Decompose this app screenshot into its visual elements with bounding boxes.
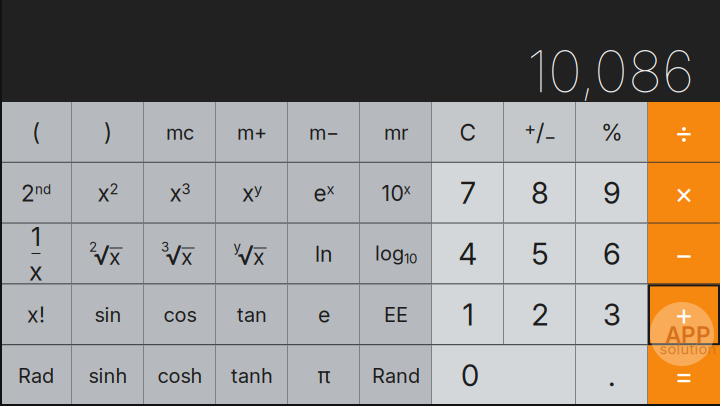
staticText: √ <box>93 239 110 271</box>
button[interactable]: 10x <box>360 163 432 224</box>
button[interactable]: . <box>576 345 648 406</box>
staticText: + <box>674 297 693 333</box>
staticText: m− <box>309 120 339 144</box>
staticText: tan <box>237 303 267 327</box>
button[interactable]: tan <box>216 284 288 345</box>
staticText: 5 <box>531 236 548 272</box>
button[interactable]: 6 <box>576 224 648 284</box>
button[interactable]: 2nd <box>0 163 72 224</box>
staticText: % <box>601 119 623 146</box>
button[interactable]: mc <box>144 102 216 163</box>
staticText: × <box>674 175 693 211</box>
staticText: e <box>318 302 330 328</box>
button[interactable]: ex <box>288 163 360 224</box>
staticText: cos <box>163 303 196 327</box>
button[interactable]: 7 <box>432 163 504 224</box>
button[interactable]: mr <box>360 102 432 163</box>
button[interactable]: 4 <box>432 224 504 284</box>
staticText: 2 <box>89 239 97 255</box>
staticText: 10,086 <box>527 37 694 106</box>
staticText: 8 <box>531 175 549 211</box>
button[interactable]: 3 <box>576 284 648 345</box>
staticText: Rand <box>372 363 420 388</box>
staticText: 1 <box>31 221 41 252</box>
button[interactable]: × <box>648 163 720 224</box>
staticText: √ <box>165 239 182 271</box>
button[interactable]: e <box>288 284 360 345</box>
button[interactable]: π <box>288 345 360 406</box>
button[interactable]: 3 <box>144 224 216 284</box>
button[interactable]: +/− <box>504 102 576 163</box>
staticText: tanh <box>231 363 273 388</box>
staticText: m+ <box>237 120 267 144</box>
staticText: y <box>233 239 240 255</box>
button[interactable]: m+ <box>216 102 288 163</box>
button[interactable]: EE <box>360 284 432 345</box>
button[interactable]: Rad <box>0 345 72 406</box>
button[interactable]: 1 <box>432 284 504 345</box>
button[interactable]: x3 <box>144 163 216 224</box>
staticText: 4 <box>458 236 477 272</box>
button[interactable]: % <box>576 102 648 163</box>
button[interactable]: 5 <box>504 224 576 284</box>
staticText: ln <box>315 241 333 267</box>
staticText: x <box>253 244 265 270</box>
staticText: √ <box>237 239 254 271</box>
staticText: 9 <box>603 175 621 211</box>
button[interactable]: y <box>216 224 288 284</box>
staticText: ( <box>32 119 40 146</box>
button[interactable]: x! <box>0 284 72 345</box>
staticText: 1 <box>462 297 473 333</box>
staticText: x <box>109 244 121 270</box>
staticText: log10 <box>375 241 417 267</box>
staticText: x <box>29 256 43 287</box>
staticText: = <box>674 358 693 393</box>
staticText: π <box>317 363 330 388</box>
button[interactable]: sinh <box>72 345 144 406</box>
button[interactable]: log10 <box>360 224 432 284</box>
button[interactable]: = <box>648 345 720 406</box>
staticText: 0 <box>461 358 479 393</box>
button[interactable]: tanh <box>216 345 288 406</box>
button[interactable]: 8 <box>504 163 576 224</box>
button[interactable]: ln <box>288 224 360 284</box>
staticText: . <box>608 358 616 393</box>
staticText: x3 <box>169 180 190 206</box>
staticText: +/− <box>524 117 556 147</box>
staticText: cosh <box>157 363 202 388</box>
button[interactable]: sin <box>72 284 144 345</box>
staticText: ex <box>313 180 334 206</box>
button[interactable]: xy <box>216 163 288 224</box>
button[interactable]: C <box>432 102 504 163</box>
button[interactable]: cosh <box>144 345 216 406</box>
button[interactable]: ) <box>72 102 144 163</box>
button[interactable]: Rand <box>360 345 432 406</box>
staticText: Rad <box>18 363 54 388</box>
staticText: 7 <box>460 175 476 211</box>
button[interactable]: ÷ <box>648 102 720 163</box>
staticText: 2 <box>531 297 548 333</box>
button[interactable]: ( <box>0 102 72 163</box>
button[interactable]: m− <box>288 102 360 163</box>
staticText: x <box>181 244 193 270</box>
staticText: sinh <box>88 363 127 388</box>
staticText: mr <box>384 120 408 144</box>
staticText: − <box>674 236 693 272</box>
button[interactable]: cos <box>144 284 216 345</box>
button[interactable]: 1 <box>0 224 72 284</box>
staticText: x2 <box>97 180 118 206</box>
staticText: C <box>459 119 476 146</box>
staticText: 3 <box>603 297 621 333</box>
button[interactable]: 2 <box>504 284 576 345</box>
button[interactable]: 0 <box>432 345 576 406</box>
button[interactable]: 9 <box>576 163 648 224</box>
staticText: ) <box>104 119 112 146</box>
button[interactable]: 2 <box>72 224 144 284</box>
button[interactable]: + <box>648 284 720 345</box>
button[interactable]: x2 <box>72 163 144 224</box>
staticText: EE <box>384 303 408 327</box>
staticText: solution <box>659 340 716 358</box>
staticText: xy <box>242 180 262 206</box>
staticText: x! <box>27 302 45 328</box>
button[interactable]: − <box>648 224 720 284</box>
